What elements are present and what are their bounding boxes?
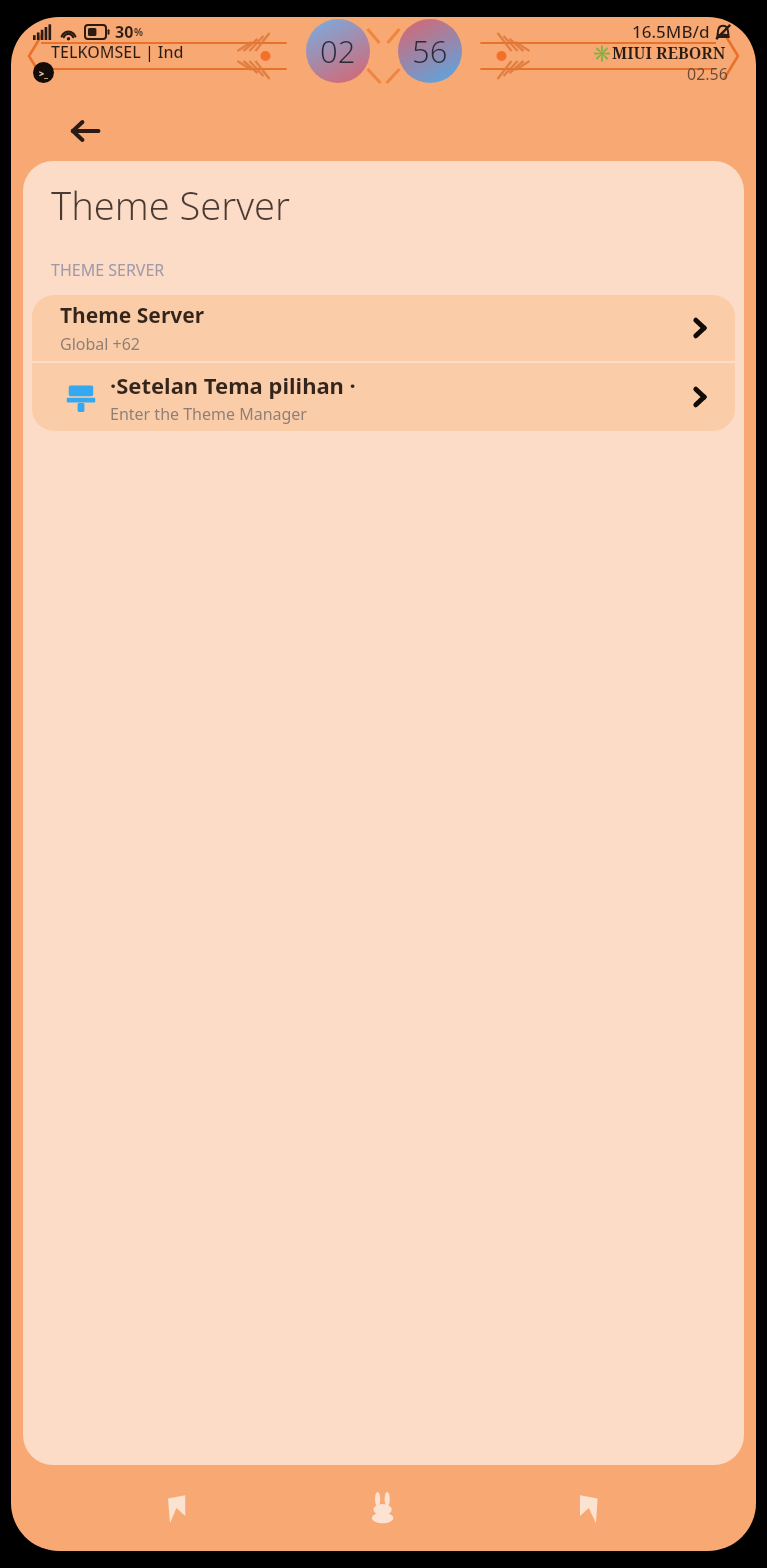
staticText: THEME SERVER (51, 259, 165, 281)
staticText: 16.5MB/d (632, 20, 710, 43)
button[interactable]: Back (141, 1473, 215, 1543)
button[interactable]: Back (63, 109, 107, 153)
staticText: 02.56 (687, 63, 728, 85)
staticText: ✳MIUI REBORN (592, 42, 726, 64)
staticText: 56 (412, 30, 448, 72)
staticText: ·Setelan Tema pilihan · (110, 370, 356, 400)
staticText: 30 (115, 21, 134, 43)
staticText: % (134, 25, 144, 39)
staticText: Theme Server (51, 179, 290, 231)
staticText: Global +62 (60, 333, 141, 355)
button[interactable]: Recents (551, 1473, 625, 1543)
staticText: TELKOMSEL | Ind (51, 41, 184, 63)
staticText: >_ (39, 67, 48, 79)
button[interactable]: Home (346, 1473, 420, 1543)
button[interactable]: ·Setelan Tema pilihan · (32, 363, 735, 431)
staticText: Enter the Theme Manager (110, 403, 307, 425)
staticText: 02 (320, 30, 356, 72)
staticText: Theme Server (60, 301, 205, 330)
button[interactable]: Theme Server (32, 295, 735, 361)
